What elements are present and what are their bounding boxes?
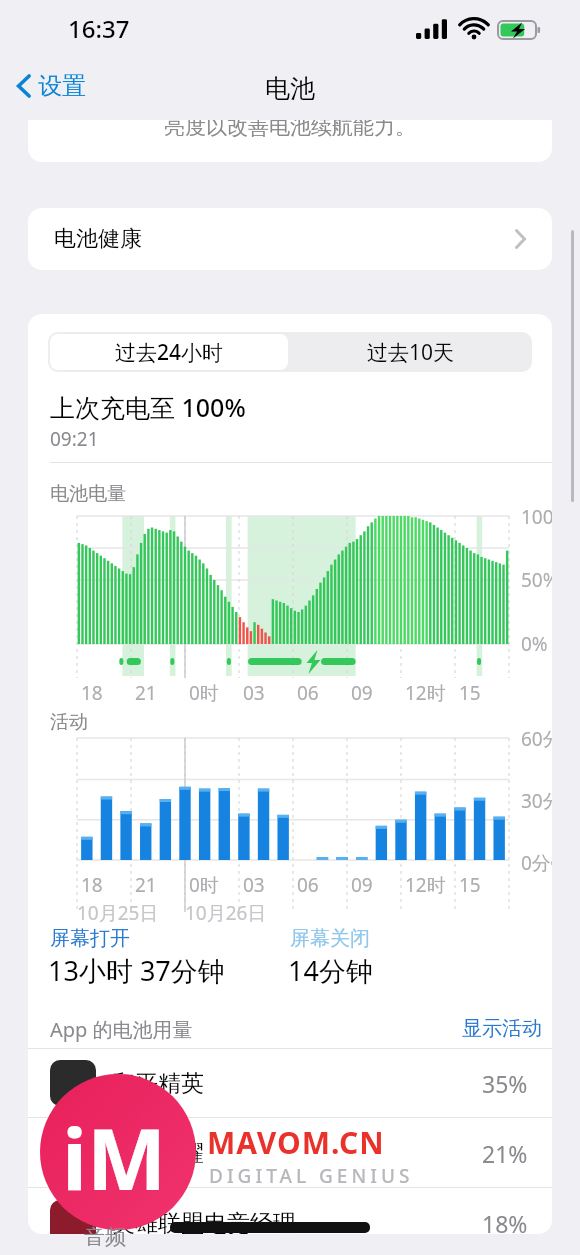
staticText: 电池电量	[50, 482, 126, 506]
staticText: 18	[81, 680, 103, 706]
button[interactable]: 设置	[8, 67, 94, 105]
button[interactable]: 过去10天	[292, 334, 530, 370]
button[interactable]: 英雄联盟电竞经理	[28, 1188, 552, 1234]
staticText: 10月25日	[77, 900, 159, 926]
button[interactable]: 过去24小时	[50, 334, 288, 370]
staticText: 03	[243, 872, 265, 898]
staticText: 显示活动	[462, 1016, 542, 1041]
staticText: 屏幕打开	[50, 926, 130, 951]
staticText: 21	[135, 872, 157, 898]
staticText: 电池	[265, 73, 315, 104]
staticText: 18%	[482, 1208, 528, 1234]
staticText: 0时	[189, 680, 219, 706]
staticText: 15	[459, 872, 481, 898]
staticText: 活动	[50, 710, 88, 734]
staticText: 60分钟	[521, 726, 552, 752]
staticText: App 的电池用量	[50, 1016, 193, 1043]
staticText: 12时	[405, 680, 446, 706]
button[interactable]: 电池健康	[28, 208, 552, 270]
staticText: 0%	[521, 631, 548, 657]
staticText: 设置	[38, 71, 86, 101]
staticText: 王者荣耀	[112, 1139, 204, 1168]
staticText: 音频	[84, 1224, 126, 1250]
staticText: 过去10天	[367, 338, 455, 367]
staticText: 03	[243, 680, 265, 706]
staticText: 09	[351, 680, 373, 706]
staticText: 10月26日	[185, 900, 267, 926]
staticText: 09	[351, 872, 373, 898]
staticText: 过去24小时	[115, 338, 224, 367]
staticText: DIGITAL GENIUS	[209, 1163, 414, 1189]
staticText: 100%	[521, 504, 552, 530]
button[interactable]: 显示活动	[458, 1012, 546, 1045]
button[interactable]: 和平精英	[28, 1048, 552, 1118]
staticText: 14分钟	[288, 952, 373, 989]
staticText: 30分钟	[521, 788, 552, 814]
staticText: 15	[459, 680, 481, 706]
staticText: 21%	[482, 1138, 528, 1169]
staticText: 06	[297, 680, 319, 706]
staticText: 0分钟	[521, 850, 552, 876]
button[interactable]: 王者荣耀	[28, 1118, 552, 1188]
staticText: 和平精英	[112, 1069, 204, 1098]
staticText: 50%	[521, 567, 552, 593]
staticText: 电池健康	[54, 225, 142, 253]
staticText: 06	[297, 872, 319, 898]
staticText: 上次充电至 100%	[50, 390, 246, 424]
staticText: 13小时 37分钟	[48, 952, 225, 989]
staticText: 12时	[405, 872, 446, 898]
staticText: 35%	[482, 1068, 528, 1099]
staticText: 09:21	[50, 426, 99, 452]
staticText: 16:37	[68, 12, 130, 45]
staticText: 屏幕关闭	[290, 926, 370, 951]
staticText: 亮度以改善电池续航能力。	[164, 120, 416, 140]
staticText: iM	[62, 1100, 167, 1214]
staticText: 0时	[189, 872, 219, 898]
staticText: 18	[81, 872, 103, 898]
staticText: 21	[135, 680, 157, 706]
staticText: 英雄联盟电竞经理	[112, 1209, 296, 1234]
staticText: MAVOM.CN	[207, 1122, 385, 1163]
